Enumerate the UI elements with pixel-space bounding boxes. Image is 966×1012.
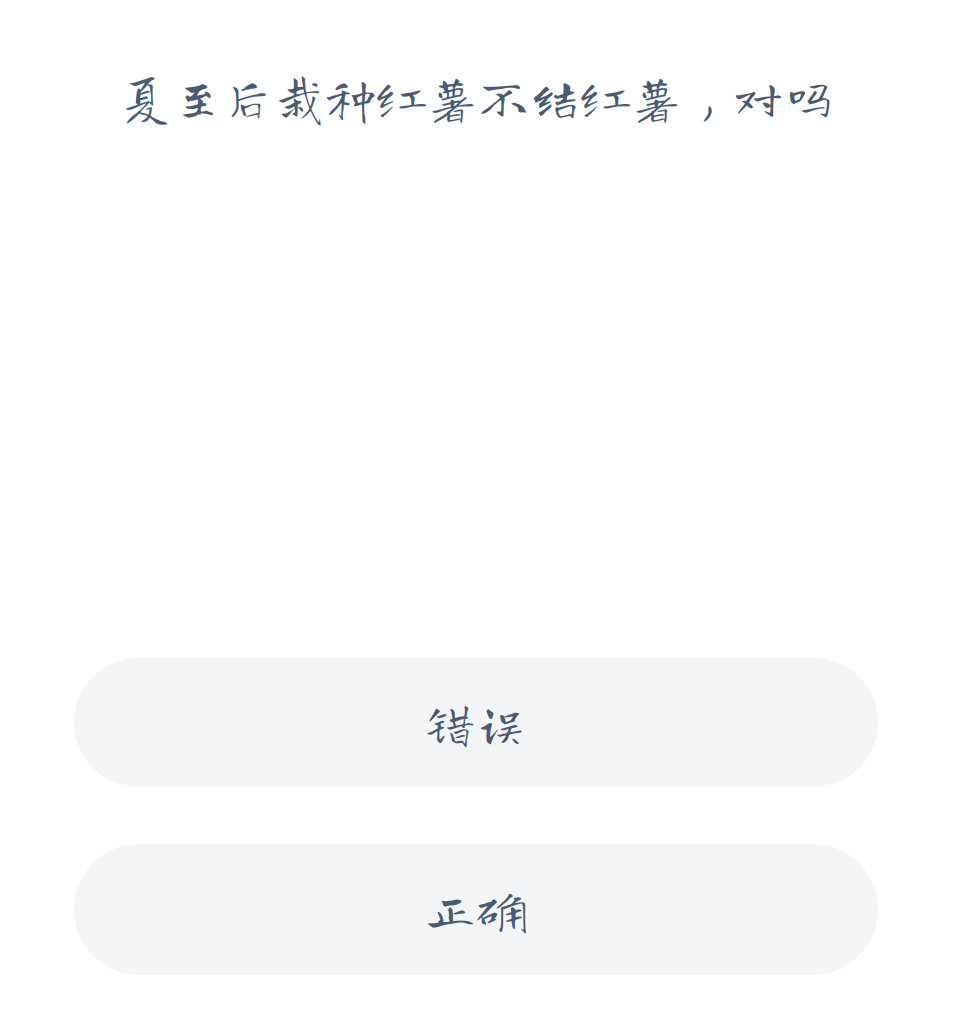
- button[interactable]: 正确: [74, 844, 878, 975]
- button[interactable]: 错误: [74, 658, 878, 787]
- staticText: 夏至后栽种红薯不结红薯，对吗: [121, 71, 835, 122]
- staticText: 错误: [425, 697, 527, 748]
- staticText: 正确: [425, 884, 527, 935]
